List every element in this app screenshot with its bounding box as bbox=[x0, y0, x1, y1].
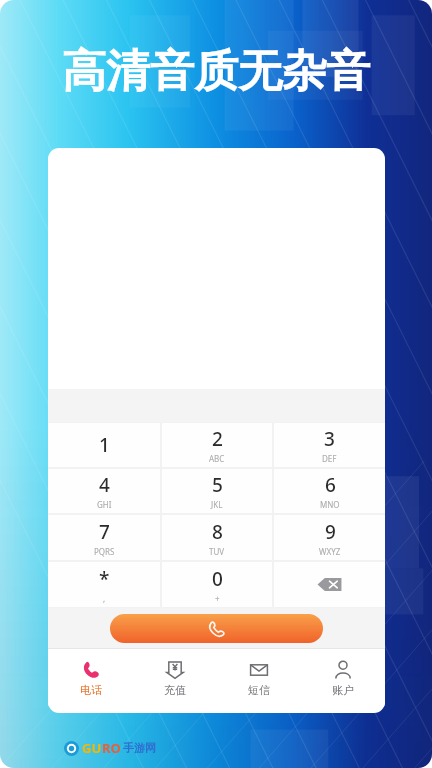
staticText: 4 bbox=[99, 472, 110, 498]
staticText: 电话 bbox=[80, 683, 102, 697]
staticText: , bbox=[103, 593, 106, 604]
staticText: * bbox=[99, 566, 110, 592]
staticText: DEF bbox=[322, 453, 337, 464]
staticText: 充值 bbox=[164, 683, 186, 697]
staticText: GU bbox=[82, 739, 102, 757]
staticText: 短信 bbox=[248, 683, 270, 697]
staticText: GHI bbox=[97, 499, 112, 510]
staticText: WXYZ bbox=[319, 546, 341, 557]
staticText: 8 bbox=[212, 519, 223, 545]
staticText: 账户 bbox=[332, 683, 354, 697]
button[interactable]: 删除 bbox=[274, 562, 385, 607]
button[interactable]: 电话 bbox=[48, 649, 133, 707]
button[interactable]: 7 bbox=[48, 515, 160, 560]
button[interactable]: 1 bbox=[48, 423, 160, 467]
staticText: TUV bbox=[209, 546, 225, 557]
button[interactable]: 9 bbox=[274, 515, 385, 560]
staticText: MNO bbox=[320, 499, 340, 510]
button[interactable]: * bbox=[48, 562, 160, 607]
staticText: 高清音质无杂音 bbox=[62, 44, 370, 99]
staticText: 1 bbox=[99, 432, 110, 458]
staticText: 手游网 bbox=[123, 741, 156, 755]
staticText: 5 bbox=[212, 472, 223, 498]
button[interactable]: 8 bbox=[162, 515, 272, 560]
other: 删除 bbox=[317, 577, 343, 592]
button[interactable]: 2 bbox=[162, 423, 272, 467]
button[interactable]: 6 bbox=[274, 469, 385, 513]
button[interactable]: 短信 bbox=[217, 649, 301, 707]
staticText: 2 bbox=[212, 426, 223, 452]
button[interactable]: 5 bbox=[162, 469, 272, 513]
staticText: RO bbox=[102, 739, 121, 757]
button[interactable]: 0 bbox=[162, 562, 272, 607]
staticText: JKL bbox=[211, 499, 223, 510]
button[interactable]: 账户 bbox=[301, 649, 385, 707]
button[interactable]: 4 bbox=[48, 469, 160, 513]
button[interactable]: 拨号 bbox=[110, 614, 323, 643]
staticText: PQRS bbox=[94, 546, 115, 557]
staticText: 3 bbox=[324, 426, 335, 452]
staticText: ABC bbox=[209, 453, 225, 464]
staticText: + bbox=[215, 593, 220, 604]
staticText: 6 bbox=[325, 472, 336, 498]
button[interactable]: 充值 bbox=[133, 649, 217, 707]
staticText: 7 bbox=[99, 519, 110, 545]
staticText: 9 bbox=[325, 519, 336, 545]
button[interactable]: 3 bbox=[274, 423, 385, 467]
staticText: 0 bbox=[212, 566, 223, 592]
